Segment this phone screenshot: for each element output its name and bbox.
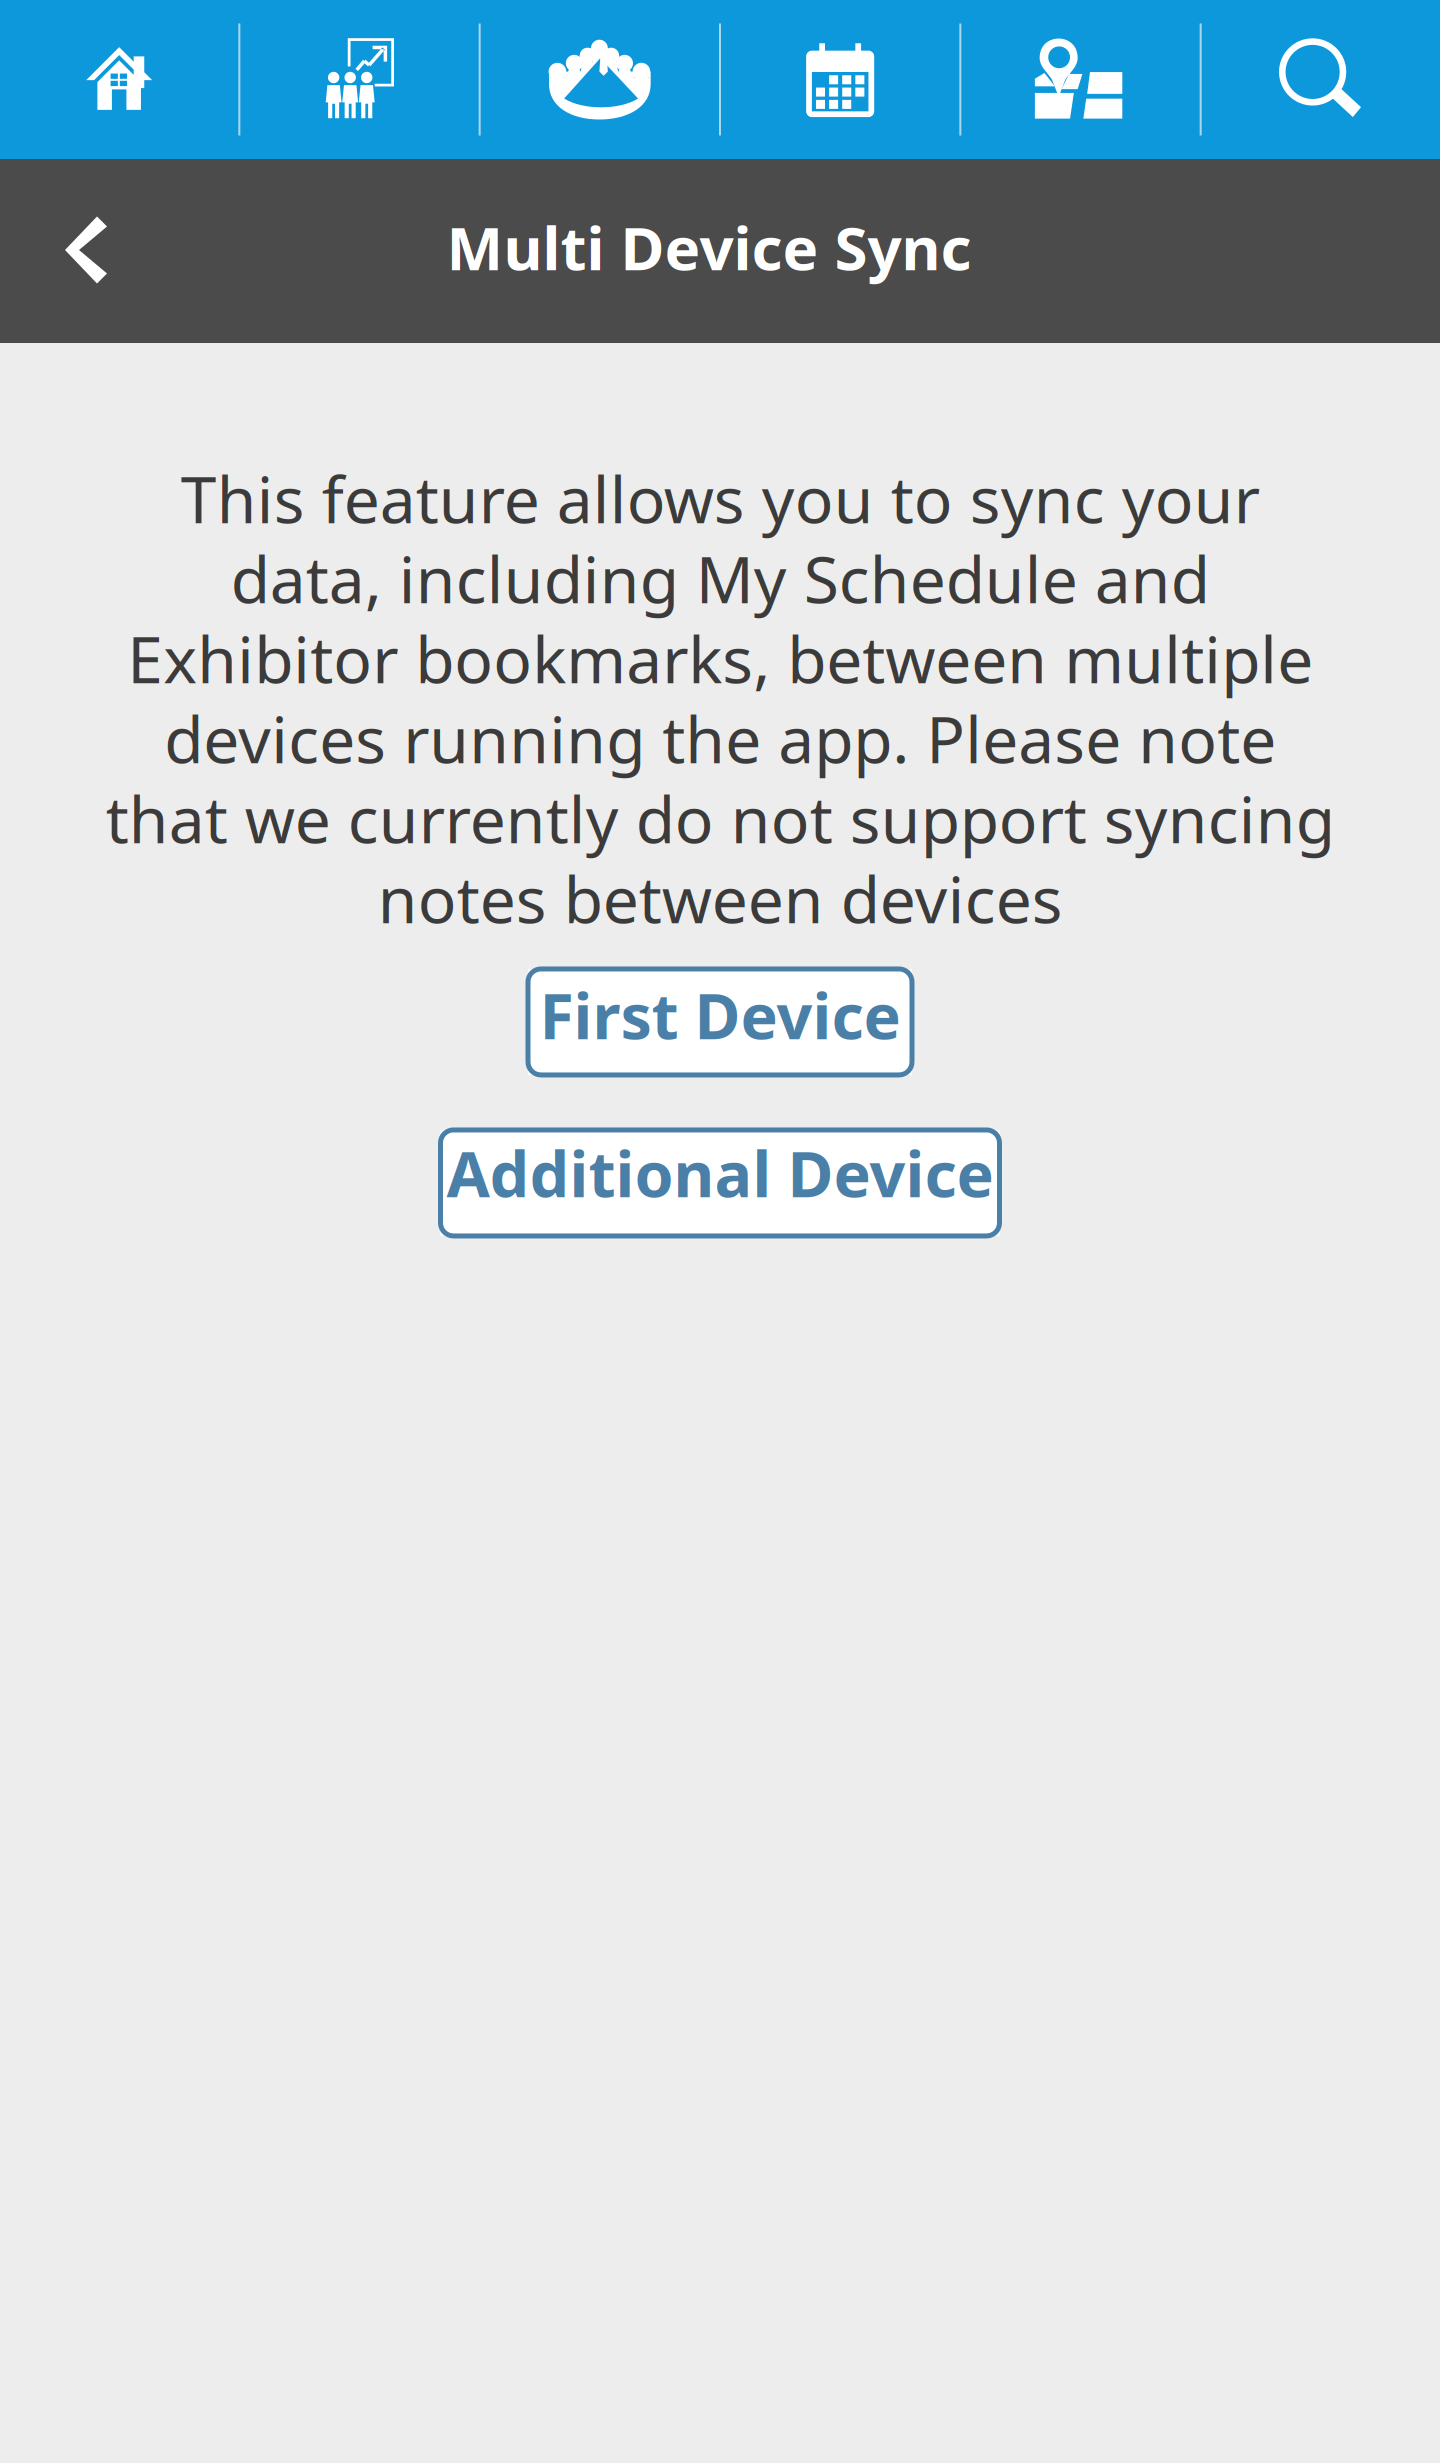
button[interactable]: Attendees (240, 0, 479, 159)
button[interactable]: Search (1202, 0, 1440, 159)
staticText: This feature allows you to sync your dat… (105, 456, 1334, 941)
staticText: First Device (539, 973, 900, 1056)
staticText: Additional Device (446, 1131, 993, 1214)
button[interactable]: Additional Device (440, 1130, 999, 1236)
button[interactable]: Back (0, 159, 172, 343)
staticText: Multi Device Sync (446, 207, 971, 287)
button[interactable]: Maps (961, 0, 1200, 159)
button[interactable]: Schedule (721, 0, 959, 159)
button[interactable]: First Device (528, 969, 912, 1075)
button[interactable]: Home (0, 0, 238, 159)
button[interactable]: Sessions (481, 0, 719, 159)
